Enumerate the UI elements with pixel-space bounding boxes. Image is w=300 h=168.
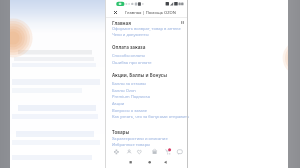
button[interactable]: Оплата заказа [112,44,190,50]
button[interactable]: Оформить возврат, товар в аптеке [112,26,190,32]
button[interactable]: Как узнать, что за бонусами отправить ба… [112,114,190,120]
button[interactable]: Способы оплаты [112,53,190,59]
button[interactable]: Favorites [154,147,164,158]
button[interactable]: Характеристики и описание [112,136,190,142]
button[interactable]: Profile [134,147,144,158]
button[interactable]: Вопросы о заказе [112,108,190,114]
button[interactable]: Ошибка при оплате [112,60,190,66]
button[interactable]: Close [106,8,125,17]
button[interactable]: Баллы Ozon [112,88,190,94]
button[interactable]: Basket [180,147,190,158]
button[interactable]: Чеки и документы [112,32,190,38]
button[interactable]: Home [111,147,121,158]
button[interactable]: Избранные товары [112,142,190,148]
button[interactable]: Главная [112,20,190,26]
button[interactable]: Premium Подписка [112,94,190,100]
button[interactable]: Акции [112,101,190,107]
button[interactable]: Акции, Баллы и Бонусы [112,72,190,78]
button[interactable]: Товары [112,129,190,135]
staticText: Главная | Помощь OZON [125,10,176,16]
button[interactable]: Menu [180,20,185,25]
button[interactable]: Баллы за отзывы [112,81,190,87]
